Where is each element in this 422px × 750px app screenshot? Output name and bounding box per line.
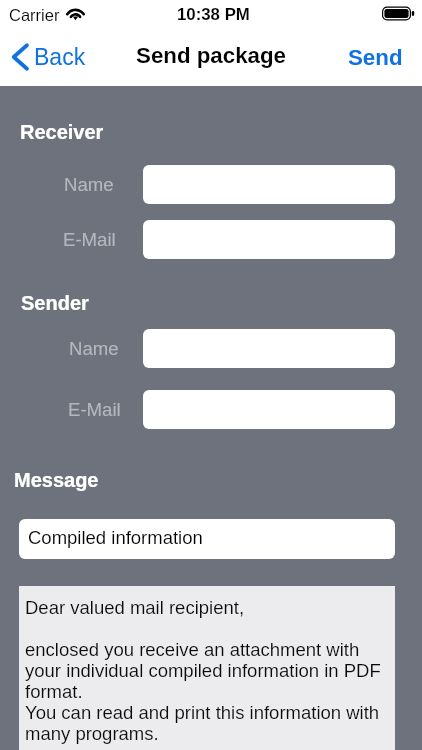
staticText: E-Mail xyxy=(68,399,121,420)
staticText: Message xyxy=(14,469,99,491)
staticText: Receiver xyxy=(20,121,104,143)
staticText: E-Mail xyxy=(63,229,116,250)
button[interactable]: Back xyxy=(5,38,96,76)
button[interactable]: Compiled information xyxy=(19,519,395,559)
staticText: Carrier xyxy=(9,6,60,24)
button[interactable]: Dear valued mail recipient, enclosed you… xyxy=(19,586,395,750)
button[interactable]: E-Mail xyxy=(143,390,395,429)
staticText: Dear valued mail recipient, enclosed you… xyxy=(25,597,381,744)
staticText: Send package xyxy=(0,43,422,68)
staticText: 10:38 PM xyxy=(177,5,250,24)
button[interactable]: Name xyxy=(143,165,395,204)
staticText: Back xyxy=(34,44,86,70)
staticText: Compiled information xyxy=(28,527,203,548)
button[interactable]: E-Mail xyxy=(143,220,395,259)
button[interactable]: Send xyxy=(336,40,422,75)
staticText: Name xyxy=(64,174,114,195)
button[interactable]: Name xyxy=(143,329,395,368)
staticText: Send xyxy=(348,45,403,70)
staticText: Sender xyxy=(21,292,89,314)
staticText: Name xyxy=(69,338,119,359)
